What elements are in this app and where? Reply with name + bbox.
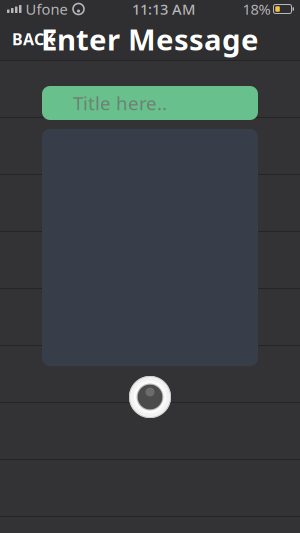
staticText: Enter Message bbox=[41, 19, 259, 58]
staticText: Ufone bbox=[25, 0, 67, 19]
staticText: BACK bbox=[12, 28, 55, 50]
staticText: Title here.. bbox=[73, 91, 167, 115]
button[interactable]: Title here.. bbox=[42, 86, 258, 120]
button[interactable]: BACK bbox=[0, 18, 67, 60]
button[interactable]: Record bbox=[127, 374, 173, 420]
staticText: 11:13 AM bbox=[132, 0, 195, 19]
staticText: 18% bbox=[242, 0, 270, 19]
